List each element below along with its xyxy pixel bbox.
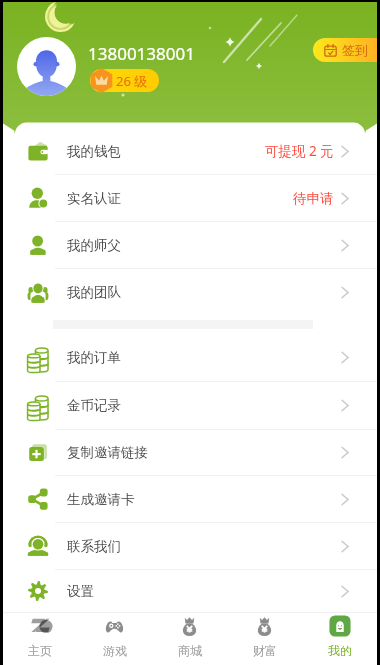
button[interactable]: 生成邀请卡	[0, 476, 380, 522]
staticText: 我的师父	[67, 237, 121, 254]
staticText: 26 级	[116, 72, 148, 90]
button[interactable]: 主页	[3, 613, 77, 665]
button[interactable]: 我的订单	[0, 329, 380, 381]
button[interactable]: 金币记录	[0, 382, 380, 429]
button[interactable]: 我的钱包	[0, 122, 380, 174]
button[interactable]: 26 级	[90, 69, 159, 92]
staticText: 生成邀请卡	[67, 491, 135, 508]
staticText: 主页	[28, 643, 52, 658]
staticText: 我的订单	[67, 349, 121, 366]
button[interactable]: User avatar	[17, 37, 76, 96]
button[interactable]: 我的师父	[0, 222, 380, 268]
staticText: 联系我们	[67, 538, 121, 555]
staticText: 财富	[253, 643, 277, 658]
staticText: 我的	[328, 643, 352, 658]
button[interactable]: 我的	[302, 613, 377, 665]
staticText: 复制邀请链接	[67, 444, 148, 461]
button[interactable]: 联系我们	[0, 523, 380, 569]
staticText: 商城	[178, 643, 202, 658]
button[interactable]: 游戏	[77, 613, 152, 665]
staticText: 游戏	[103, 643, 127, 658]
button[interactable]: 实名认证	[0, 175, 380, 221]
staticText: 待申请	[293, 190, 334, 207]
staticText: 13800138001	[88, 42, 195, 65]
staticText: 实名认证	[67, 190, 121, 207]
button[interactable]: 我的团队	[0, 269, 380, 316]
button[interactable]: 设置	[0, 570, 380, 612]
staticText: 我的团队	[67, 284, 121, 301]
button[interactable]: 商城	[152, 613, 227, 665]
staticText: 签到	[342, 42, 368, 58]
button[interactable]: 复制邀请链接	[0, 430, 380, 475]
staticText: 我的钱包	[67, 143, 121, 160]
staticText: 金币记录	[67, 397, 121, 414]
button[interactable]: 签到	[313, 38, 377, 62]
staticText: 设置	[67, 583, 94, 600]
staticText: 可提现 2 元	[265, 142, 334, 160]
button[interactable]: 财富	[227, 613, 302, 665]
